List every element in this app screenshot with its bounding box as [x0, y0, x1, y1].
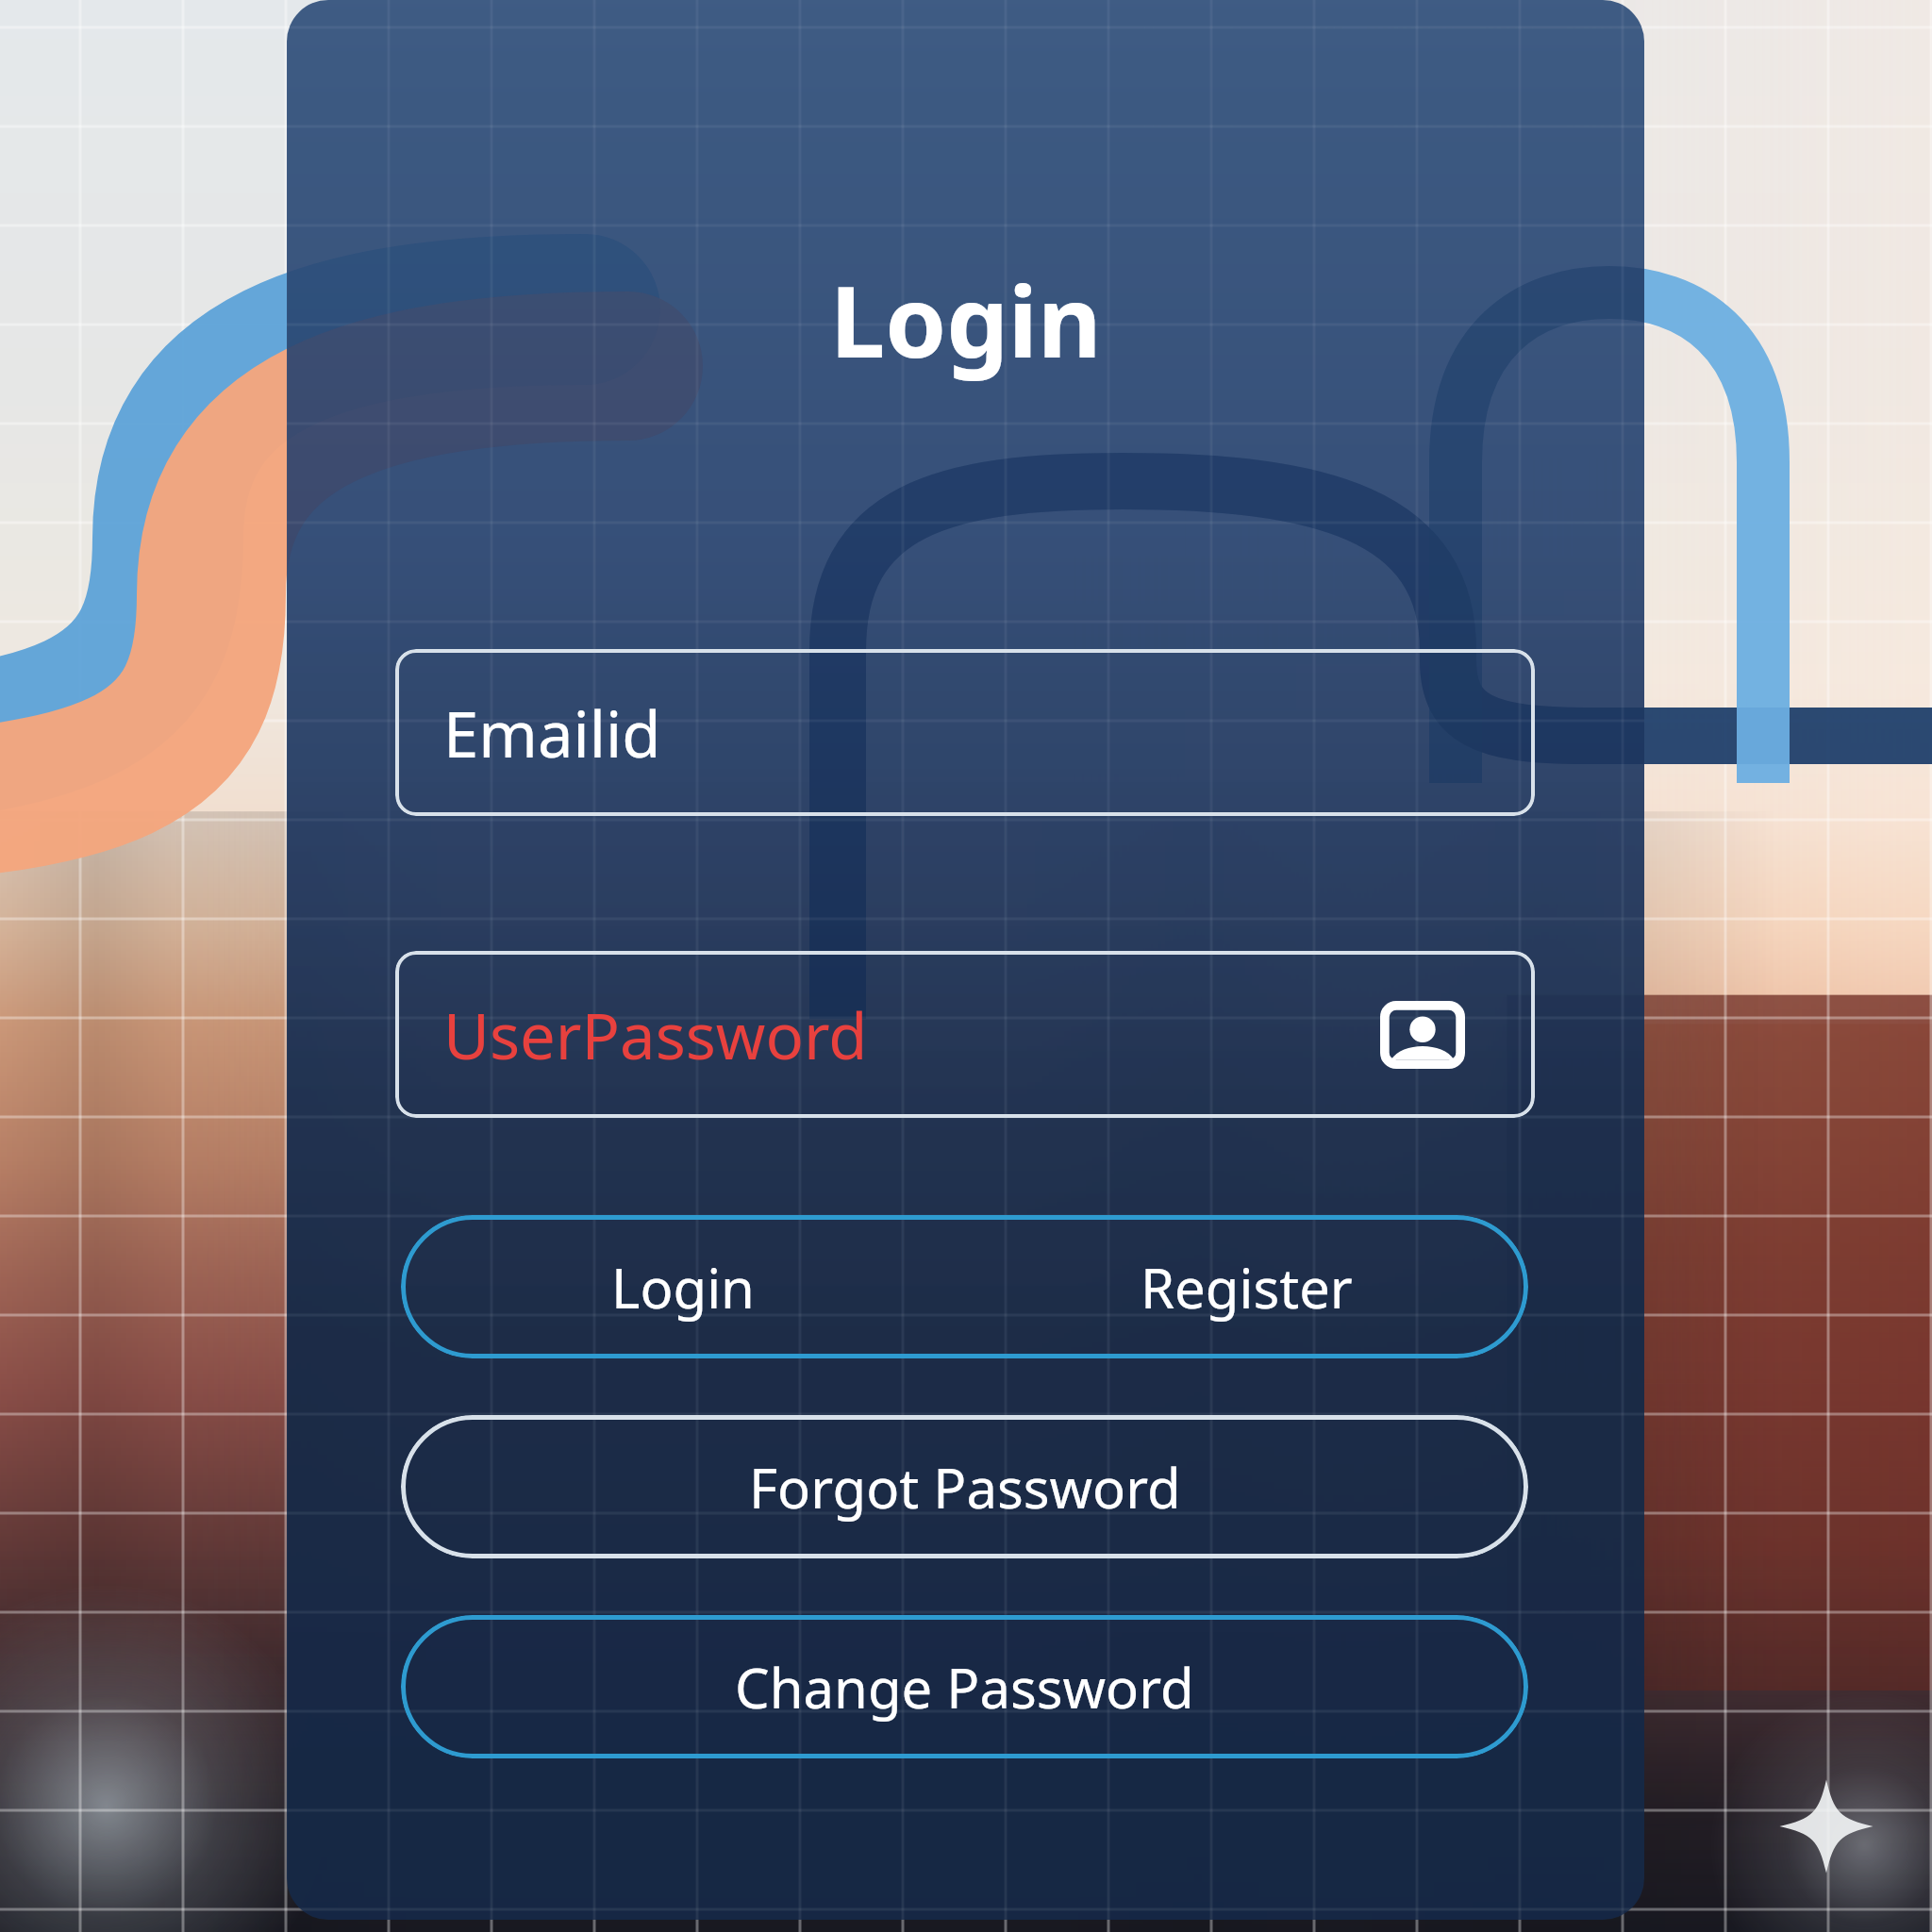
button[interactable]: Register: [964, 1215, 1528, 1358]
button[interactable]: Show password: [1380, 1001, 1465, 1069]
staticText: Register: [1141, 1250, 1353, 1324]
button[interactable]: Forgot Password: [401, 1415, 1528, 1558]
staticText: Login: [830, 253, 1102, 385]
button[interactable]: Change Password: [401, 1615, 1528, 1758]
staticText: Change Password: [735, 1650, 1194, 1724]
staticText: Emailid: [443, 690, 661, 775]
button[interactable]: UserPassword: [395, 951, 1535, 1118]
staticText: UserPassword: [443, 991, 868, 1077]
button[interactable]: Emailid: [395, 649, 1535, 816]
staticText: Forgot Password: [749, 1450, 1181, 1524]
button[interactable]: Login: [401, 1215, 964, 1358]
staticText: Login: [611, 1250, 755, 1324]
